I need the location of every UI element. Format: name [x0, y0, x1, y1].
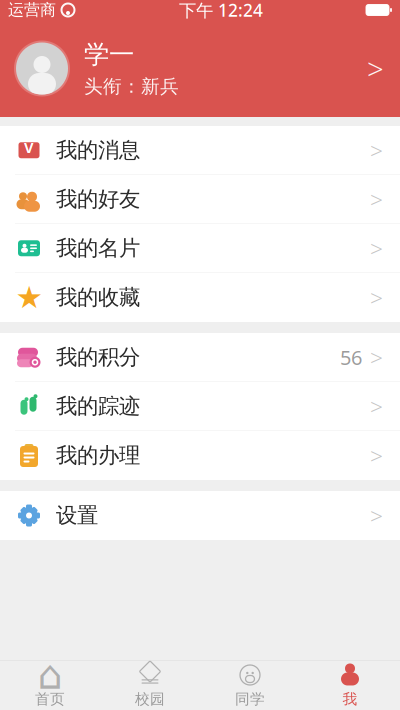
staticText: 校园: [135, 690, 165, 708]
staticText: 我的积分: [56, 344, 140, 370]
button[interactable]: 我的办理: [0, 431, 400, 480]
button[interactable]: 我的积分: [0, 333, 400, 382]
button[interactable]: 我的好友: [0, 175, 400, 224]
staticText: >: [370, 282, 383, 312]
staticText: 设置: [56, 502, 98, 529]
staticText: 头衔：新兵: [84, 75, 179, 98]
staticText: 我的好友: [56, 186, 140, 212]
button[interactable]: 我的踪迹: [0, 382, 400, 431]
button[interactable]: 设置: [0, 491, 400, 540]
staticText: >: [370, 391, 383, 421]
staticText: ⌂: [37, 652, 62, 698]
staticText: >: [370, 440, 383, 470]
staticText: 学一: [84, 39, 134, 70]
button[interactable]: ★: [0, 273, 400, 322]
staticText: 我: [342, 690, 357, 708]
staticText: >: [370, 500, 383, 530]
staticText: 我的收藏: [56, 284, 140, 311]
staticText: >: [370, 342, 383, 372]
staticText: >: [367, 49, 384, 88]
button[interactable]: V: [0, 126, 400, 175]
staticText: 56: [340, 344, 362, 371]
staticText: >: [370, 233, 383, 263]
staticText: 我的办理: [56, 442, 140, 469]
staticText: 我的踪迹: [56, 393, 140, 419]
button[interactable]: 同学: [200, 661, 300, 710]
staticText: 下午 12:24: [179, 0, 263, 21]
staticText: ★: [15, 280, 42, 315]
button[interactable]: ⌂: [0, 661, 100, 710]
button[interactable]: 我的名片: [0, 224, 400, 273]
staticText: 运营商: [8, 0, 56, 20]
staticText: V: [24, 137, 34, 157]
staticText: 首页: [35, 690, 65, 708]
staticText: 同学: [235, 690, 265, 708]
button[interactable]: 我: [300, 661, 400, 710]
staticText: >: [370, 184, 383, 214]
button[interactable]: 学一: [0, 20, 400, 117]
staticText: 我的消息: [56, 137, 140, 163]
staticText: 我的名片: [56, 235, 140, 261]
staticText: >: [370, 135, 383, 165]
button[interactable]: 校园: [100, 661, 200, 710]
